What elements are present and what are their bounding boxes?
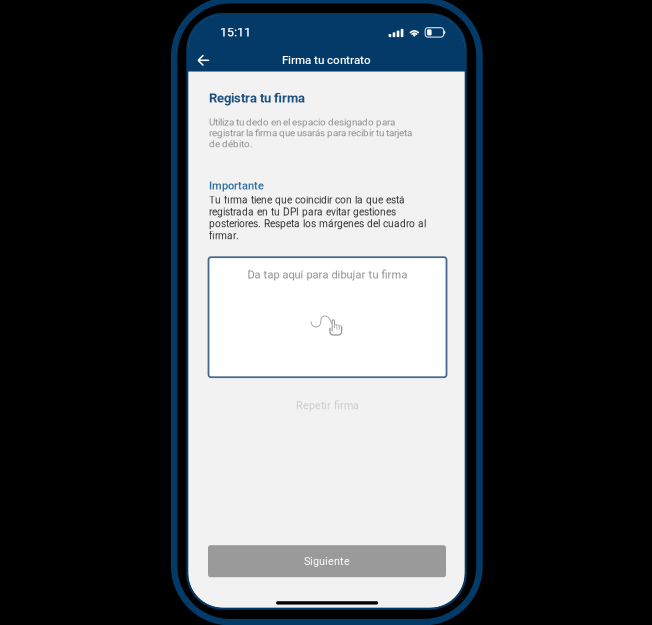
staticText: Repetir firma bbox=[296, 399, 359, 412]
staticText: Utiliza tu dedo en el espacio designado … bbox=[209, 117, 412, 149]
staticText: 15:11 bbox=[220, 25, 251, 40]
button[interactable]: Back bbox=[191, 48, 217, 72]
staticText: Tu firma tiene que coincidir con la que … bbox=[209, 194, 426, 242]
staticText: Firma tu contrato bbox=[282, 53, 371, 67]
button[interactable]: Siguiente bbox=[208, 545, 446, 577]
button[interactable]: Repetir firma bbox=[208, 393, 446, 419]
staticText: Registra tu firma bbox=[209, 90, 305, 106]
button[interactable]: Da tap aquí para dibujar tu firma bbox=[208, 257, 446, 377]
staticText: Siguiente bbox=[304, 555, 350, 568]
staticText: Da tap aquí para dibujar tu firma bbox=[247, 268, 407, 281]
staticText: Importante bbox=[209, 179, 264, 192]
